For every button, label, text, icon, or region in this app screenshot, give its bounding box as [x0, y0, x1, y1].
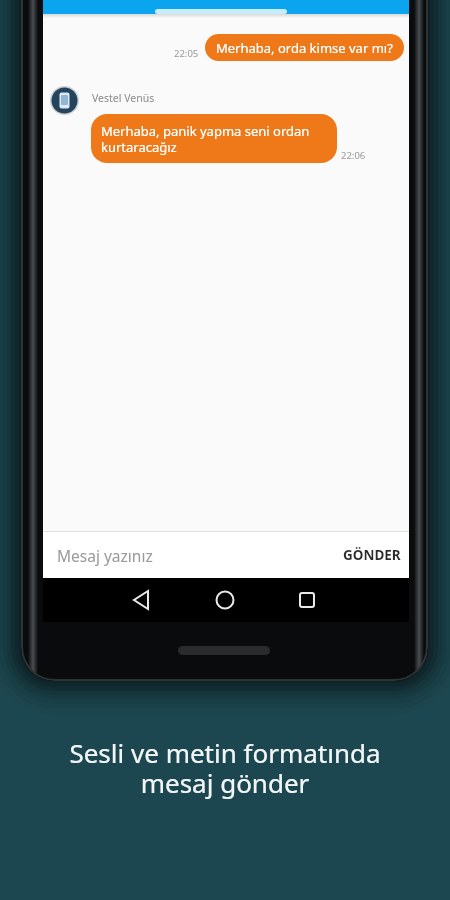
staticText: Mesaj yazınız	[57, 545, 343, 566]
button[interactable]: GÖNDER	[343, 546, 409, 564]
staticText: GÖNDER	[343, 546, 401, 564]
button[interactable]: Merhaba, panik yapma seni ordan kurtarac…	[91, 114, 337, 163]
button[interactable]	[216, 591, 234, 609]
button[interactable]	[133, 591, 151, 609]
staticText: Merhaba, orda kimse var mı?	[216, 39, 393, 57]
button[interactable]: Mesaj yazınız	[43, 532, 409, 578]
staticText: Vestel Venüs	[92, 91, 155, 105]
button[interactable]	[299, 592, 315, 608]
staticText: Sesli ve metin formatında mesaj gönder	[0, 735, 450, 800]
staticText: Merhaba, panik yapma seni ordan kurtarac…	[101, 122, 310, 155]
staticText: 22:06	[341, 149, 366, 162]
button[interactable]: Merhaba, orda kimse var mı?	[205, 34, 404, 61]
staticText: 22:05	[174, 47, 199, 60]
